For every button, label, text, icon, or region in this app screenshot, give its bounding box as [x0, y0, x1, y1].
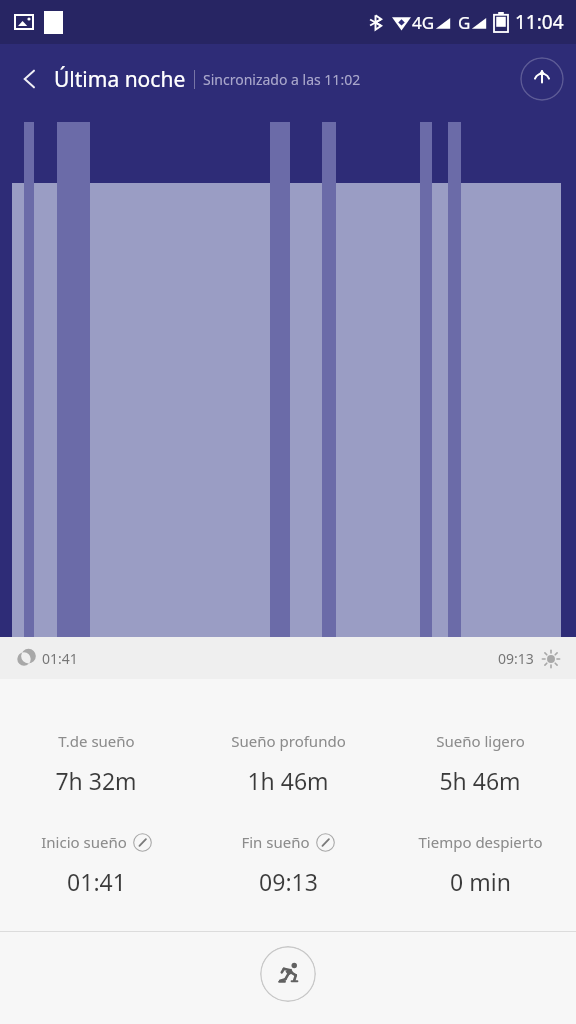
button[interactable]: Tiempo despierto	[384, 830, 576, 899]
staticText: Última noche	[54, 65, 186, 94]
button[interactable]: Inicio sueño	[0, 830, 192, 899]
staticText: Fin sueño	[241, 832, 310, 852]
button[interactable]: Actividad	[260, 946, 316, 1002]
staticText: 0 min	[450, 866, 511, 897]
staticText: 01:41	[67, 866, 126, 897]
staticText: 01:41	[42, 649, 78, 668]
button[interactable]: Sueño profundo	[192, 729, 384, 798]
staticText: Sueño profundo	[231, 731, 346, 751]
staticText: Inicio sueño	[41, 832, 127, 852]
staticText: 1h 46m	[247, 765, 329, 796]
staticText: 7h 32m	[55, 765, 137, 796]
staticText: G	[458, 11, 471, 34]
button[interactable]: Atrás	[6, 55, 54, 103]
staticText: 09:13	[259, 866, 318, 897]
button[interactable]: Compartir	[520, 57, 564, 101]
staticText: 09:13	[498, 649, 534, 668]
staticText: Sincronizado a las 11:02	[203, 70, 361, 89]
staticText: T.de sueño	[58, 731, 135, 751]
staticText: 11:04	[515, 9, 564, 35]
staticText: Tiempo despierto	[418, 832, 543, 852]
button[interactable]: T.de sueño	[0, 729, 192, 798]
staticText: Sueño ligero	[436, 731, 525, 751]
staticText: 4G	[412, 11, 435, 34]
button[interactable]: Fin sueño	[192, 830, 384, 899]
button[interactable]: Sueño ligero	[384, 729, 576, 798]
staticText: 5h 46m	[439, 765, 521, 796]
